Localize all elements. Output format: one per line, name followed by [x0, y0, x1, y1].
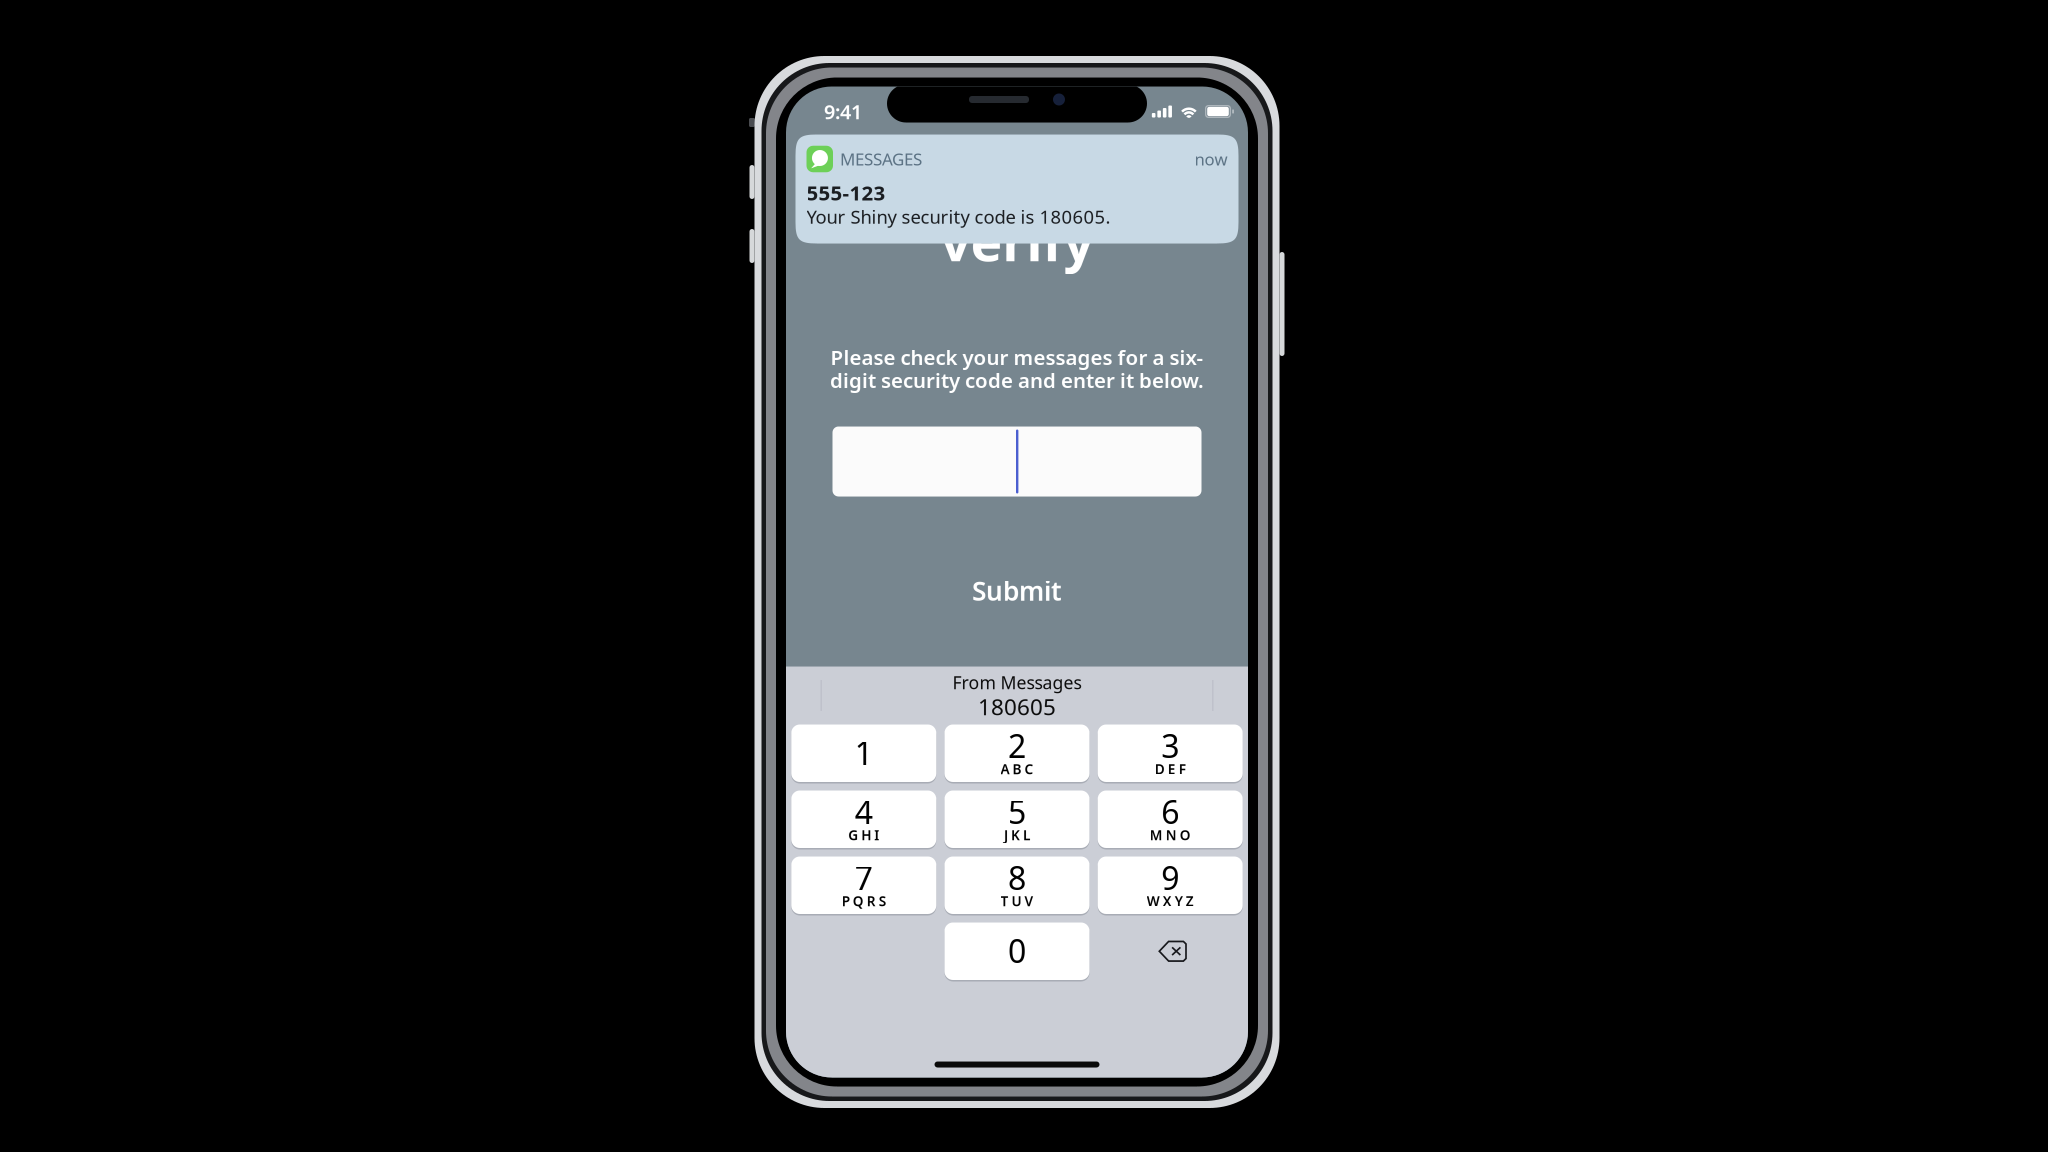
- staticText: Please check your messages for a six-: [830, 343, 1203, 371]
- button[interactable]: 8: [944, 856, 1089, 914]
- staticText: 8: [1008, 856, 1026, 899]
- staticText: M N O: [1150, 826, 1191, 844]
- staticText: G H I: [848, 826, 879, 844]
- staticText: 555-123: [806, 179, 885, 206]
- staticText: digit security code and enter it below.: [830, 366, 1204, 394]
- staticText: 7: [855, 856, 873, 899]
- button[interactable]: 7: [791, 856, 936, 914]
- staticText: From Messages: [952, 671, 1081, 694]
- staticText: A B C: [1000, 760, 1033, 778]
- staticText: MESSAGES: [840, 148, 922, 170]
- staticText: D E F: [1155, 760, 1186, 778]
- button[interactable]: 3: [1098, 724, 1243, 782]
- staticText: W X Y Z: [1147, 892, 1194, 910]
- staticText: 3: [1161, 724, 1179, 767]
- staticText: J K L: [1004, 826, 1030, 844]
- staticText: Your Shiny security code is 180605.: [806, 204, 1110, 229]
- staticText: Submit: [972, 573, 1062, 608]
- staticText: now: [1194, 148, 1227, 170]
- staticText: 1: [855, 731, 873, 774]
- staticText: 9: [1161, 856, 1179, 899]
- staticText: P Q R S: [842, 892, 886, 910]
- staticText: 180605: [978, 692, 1056, 721]
- button[interactable]: 9: [1098, 856, 1243, 914]
- staticText: 2: [1008, 724, 1026, 767]
- staticText: verify: [940, 205, 1093, 276]
- button[interactable]: 1: [791, 724, 936, 782]
- staticText: 6: [1161, 790, 1179, 833]
- staticText: T U V: [1000, 892, 1033, 910]
- button[interactable]: 4: [791, 790, 936, 848]
- button[interactable]: 2: [944, 724, 1089, 782]
- button[interactable]: Delete: [1098, 922, 1243, 980]
- staticText: 0: [1008, 929, 1026, 972]
- button[interactable]: 0: [944, 922, 1089, 980]
- button[interactable]: 5: [944, 790, 1089, 848]
- staticText: 4: [855, 790, 873, 833]
- staticText: 9:41: [824, 98, 862, 125]
- staticText: 5: [1008, 790, 1026, 833]
- button[interactable]: Submit: [917, 568, 1117, 612]
- button[interactable]: MESSAGES: [795, 134, 1238, 243]
- button[interactable]: 6: [1098, 790, 1243, 848]
